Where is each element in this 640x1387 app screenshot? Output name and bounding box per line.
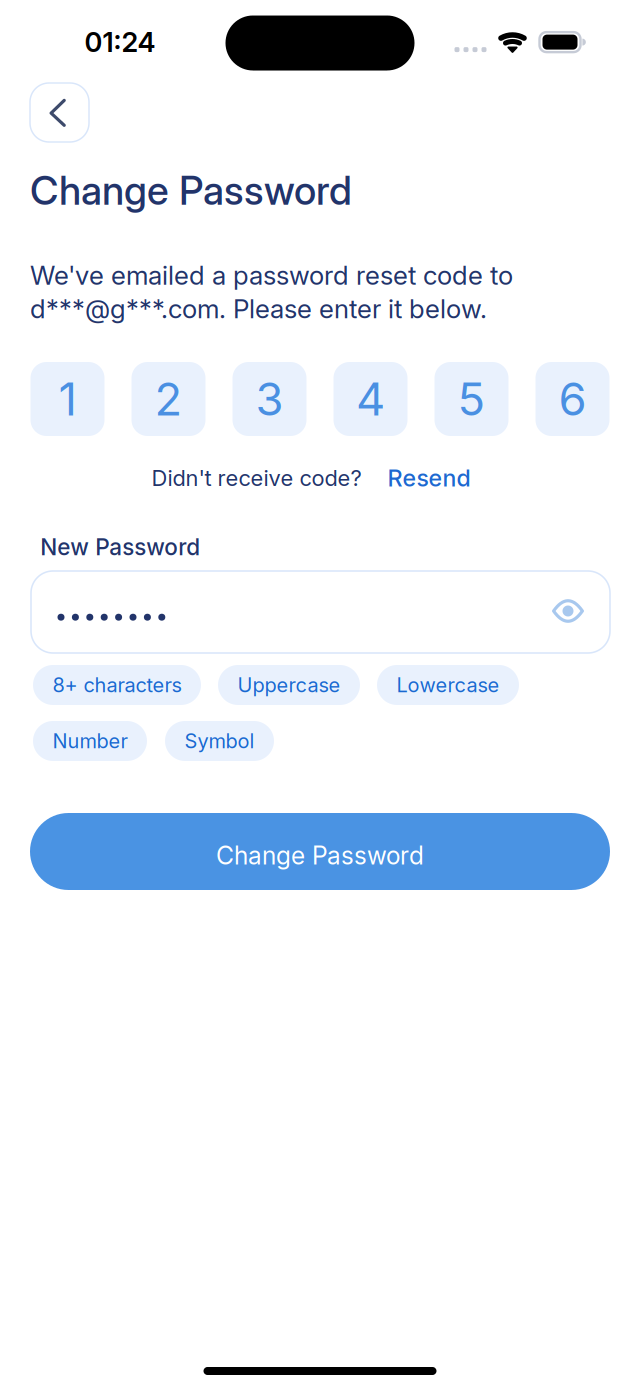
button[interactable]: 2 (131, 362, 205, 436)
staticText: Symbol (184, 729, 254, 753)
staticText: Change Password (30, 167, 352, 214)
staticText: Uppercase (237, 673, 340, 697)
staticText: Didn't receive code? (151, 465, 361, 491)
staticText: Change Password (216, 841, 424, 870)
staticText: Lowercase (396, 673, 499, 697)
button[interactable]: 3 (232, 362, 306, 436)
button[interactable]: Back (30, 83, 89, 142)
staticText: d***@g***.com. Please enter it below. (30, 293, 487, 324)
staticText: We've emailed a password reset code to (30, 259, 513, 291)
button[interactable]: Show password (538, 581, 598, 641)
staticText: 5 (457, 372, 485, 426)
button[interactable]: Change Password (30, 813, 610, 890)
staticText: 01:24 (84, 25, 155, 59)
staticText: Number (52, 729, 127, 753)
button[interactable]: Number (33, 721, 147, 761)
staticText: 4 (356, 372, 385, 426)
button[interactable]: 5 (434, 362, 508, 436)
button[interactable]: 1 (30, 362, 104, 436)
button[interactable]: Symbol (165, 721, 274, 761)
staticText: 2 (154, 372, 182, 426)
staticText: 8+ characters (52, 673, 181, 697)
button[interactable]: 4 (333, 362, 407, 436)
button[interactable]: 6 (535, 362, 609, 436)
staticText: 3 (255, 372, 283, 426)
staticText: 6 (558, 372, 586, 426)
button[interactable]: 8+ characters (33, 665, 201, 705)
button[interactable]: Uppercase (218, 665, 360, 705)
staticText: New Password (40, 533, 200, 561)
button[interactable]: Lowercase (377, 665, 519, 705)
staticText: Resend (387, 464, 470, 492)
staticText: 1 (58, 372, 76, 426)
button[interactable]: Resend (387, 464, 470, 492)
